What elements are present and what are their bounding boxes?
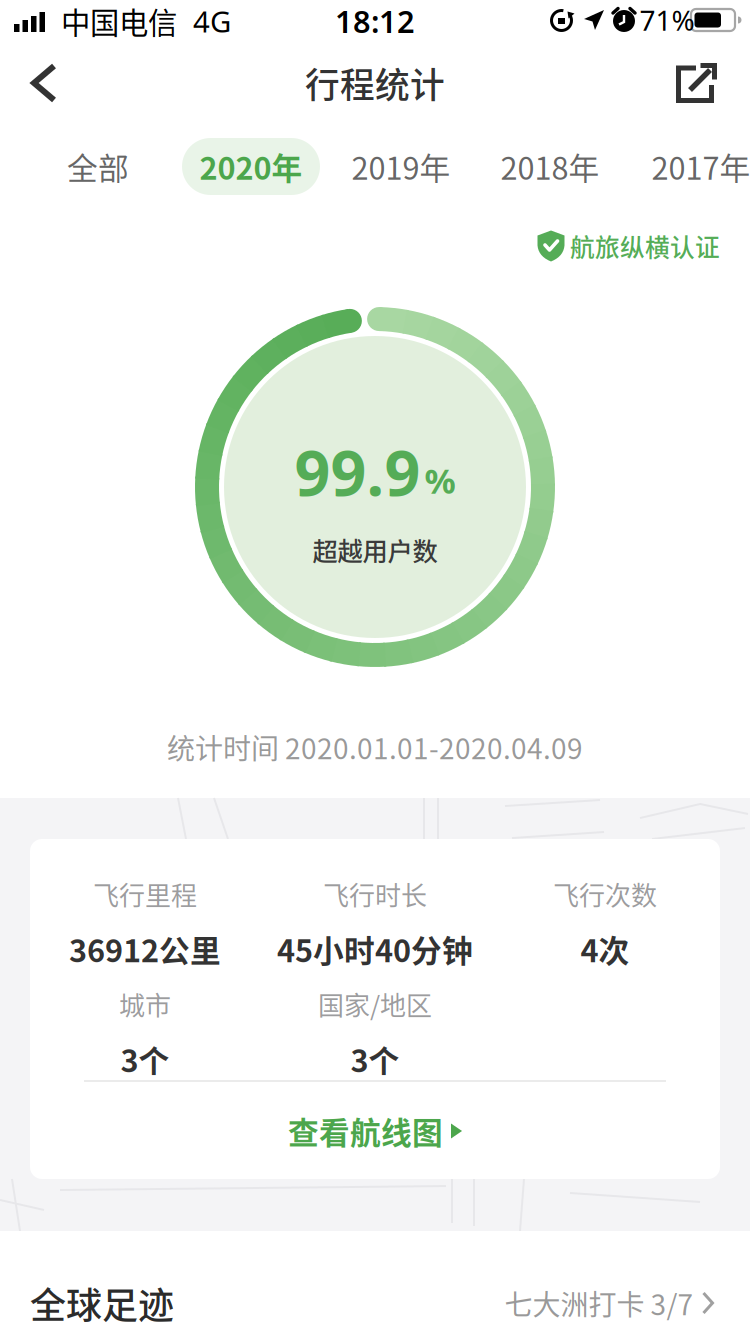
staticText: 七大洲打卡 3/7	[504, 1283, 693, 1323]
staticText: 3个	[120, 1037, 169, 1081]
staticText: 99.9	[294, 430, 420, 513]
button[interactable]: Back	[18, 50, 70, 116]
staticText: 18:12	[335, 1, 415, 41]
staticText: 45小时40分钟	[277, 927, 473, 971]
staticText: 飞行里程	[93, 875, 197, 913]
staticText: 36912公里	[69, 927, 221, 971]
staticText: 3个	[350, 1037, 399, 1081]
staticText: 国家/地区	[318, 985, 432, 1023]
button[interactable]: 2018年	[490, 138, 610, 195]
button[interactable]: 查看航线图	[268, 1101, 482, 1161]
staticText: %	[424, 457, 455, 503]
button[interactable]: 2017年	[641, 138, 750, 195]
staticText: 飞行次数	[553, 875, 657, 913]
button[interactable]: 七大洲打卡 3/7	[504, 1283, 713, 1323]
staticText: 统计时间 2020.01.01-2020.04.09	[167, 727, 583, 767]
staticText: 全部	[67, 144, 129, 189]
staticText: 4次	[580, 927, 629, 971]
staticText: 2018年	[500, 144, 599, 189]
staticText: 超越用户数	[312, 531, 437, 568]
button[interactable]: Share	[666, 53, 726, 113]
button[interactable]: 2019年	[341, 138, 461, 195]
staticText: 2020年	[199, 144, 302, 189]
staticText: 城市	[119, 985, 171, 1023]
staticText: 2019年	[351, 144, 450, 189]
staticText: 全球足迹	[30, 1277, 174, 1329]
staticText: 71%	[639, 1, 694, 39]
staticText: 4G	[193, 1, 231, 40]
staticText: 行程统计	[305, 58, 445, 108]
staticText: 飞行时长	[323, 875, 427, 913]
staticText: 查看航线图	[288, 1109, 443, 1153]
staticText: 中国电信	[61, 0, 177, 42]
staticText: 2017年	[651, 144, 750, 189]
button[interactable]: 2020年	[182, 138, 320, 195]
button[interactable]: 全部	[48, 138, 148, 195]
staticText: 航旅纵横认证	[570, 228, 720, 264]
